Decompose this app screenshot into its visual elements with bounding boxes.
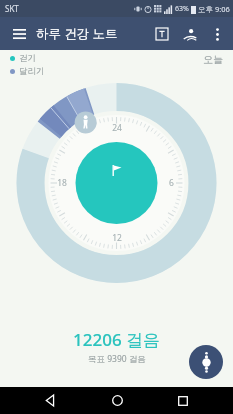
staticText: 달리기 (19, 66, 45, 77)
staticText: 하루 건강 노트 (36, 25, 118, 42)
staticText: 12 (112, 232, 122, 244)
staticText: 18 (57, 177, 67, 189)
button[interactable]: Menu (6, 21, 32, 47)
button[interactable]: Home (100, 387, 134, 414)
button[interactable]: Location (176, 20, 204, 48)
staticText: SKT (5, 3, 19, 14)
staticText: 오후 9:06 (198, 4, 230, 14)
staticText: 24 (112, 122, 122, 134)
staticText: 걷기 (19, 53, 36, 64)
staticText: 63% (175, 4, 189, 14)
button[interactable]: Back (33, 387, 67, 414)
button[interactable]: Calendar (148, 20, 176, 48)
button[interactable]: Add entry (189, 345, 223, 379)
staticText: 6 (169, 177, 174, 189)
button[interactable]: 오늘 (203, 53, 223, 66)
staticText: 12206 걸음 (73, 328, 161, 351)
staticText: 목표 9390 걸음 (88, 353, 146, 365)
button[interactable]: More options (204, 21, 230, 47)
button[interactable]: Daily activity ring, 129 percent (0, 82, 233, 387)
button[interactable]: Recent apps (166, 387, 200, 414)
